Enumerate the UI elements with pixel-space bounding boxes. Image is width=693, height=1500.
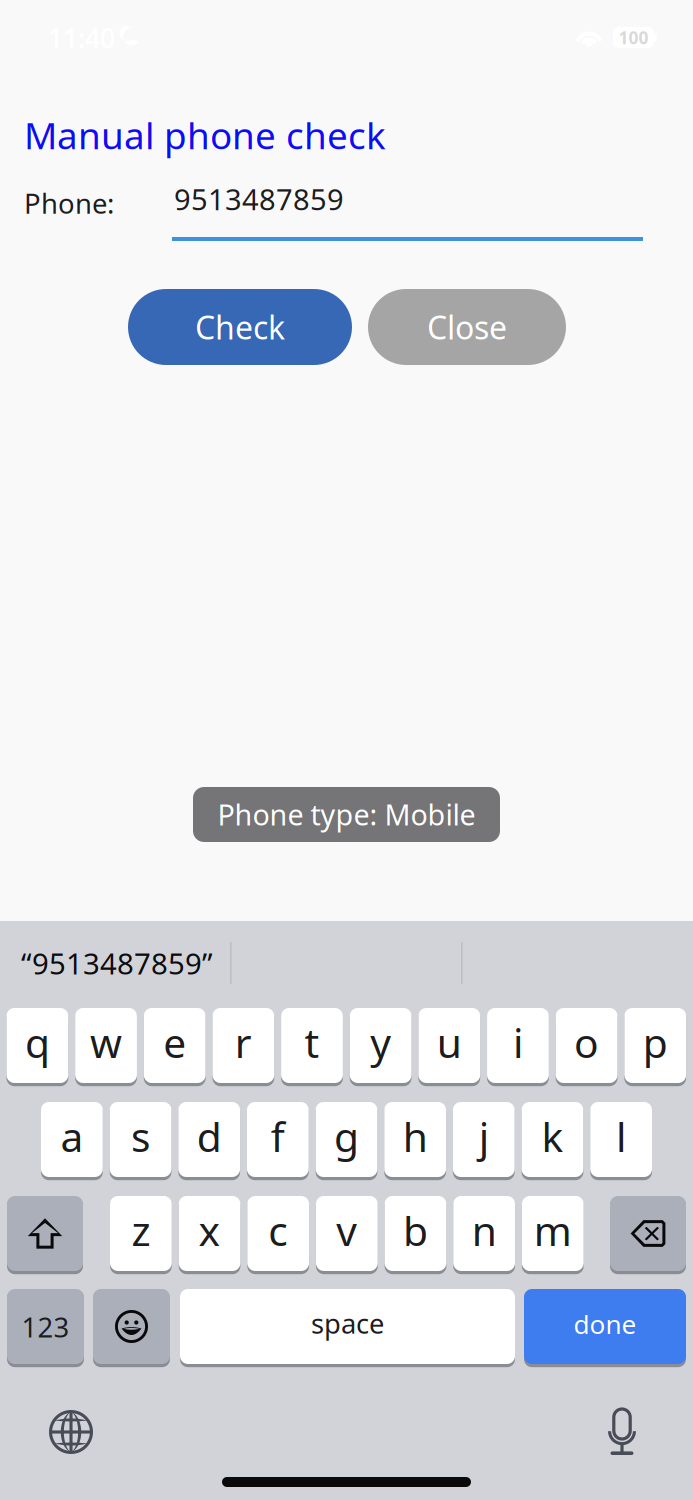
button[interactable]: u [418,1008,480,1085]
staticText: f [271,1109,285,1164]
button[interactable]: v [316,1196,378,1273]
button[interactable]: Close [368,289,566,365]
staticText: Manual phone check [24,110,386,160]
button[interactable]: Dictation [606,1407,637,1455]
staticText: s [131,1109,150,1164]
button[interactable]: Delete [610,1196,686,1273]
button[interactable]: r [212,1008,274,1085]
staticText: x [198,1203,220,1258]
staticText: g [334,1109,359,1164]
button[interactable]: 123 [7,1289,84,1366]
staticText: t [304,1015,319,1070]
staticText: u [437,1015,462,1070]
button[interactable]: y [350,1008,411,1085]
staticText: d [197,1109,222,1164]
staticText: e [163,1015,186,1070]
button[interactable]: b [385,1196,446,1273]
button[interactable]: x [179,1196,240,1273]
staticText: o [574,1015,599,1070]
button[interactable]: Shift [7,1196,83,1273]
staticText: p [643,1015,668,1070]
staticText: z [131,1203,150,1258]
button[interactable]: i [487,1008,549,1085]
staticText: j [479,1109,489,1164]
staticText: Close [427,306,507,348]
button[interactable]: Emoji [93,1289,170,1366]
staticText: Phone type: Mobile [217,795,475,834]
button[interactable]: h [384,1102,446,1179]
staticText: y [370,1015,391,1070]
staticText: 9513487859 [174,179,344,219]
staticText: done [573,1306,636,1342]
staticText: i [513,1015,523,1070]
button[interactable]: done [524,1289,686,1366]
staticText: 100 [618,26,648,49]
button[interactable]: e [144,1008,206,1085]
button[interactable]: c [247,1196,309,1273]
staticText: w [90,1015,122,1070]
staticText: Phone: [24,184,114,222]
staticText: space [311,1304,384,1342]
button[interactable]: t [281,1008,343,1085]
staticText: b [403,1203,428,1258]
button[interactable]: l [590,1102,652,1179]
button[interactable]: f [247,1102,309,1179]
button[interactable]: Check [128,289,352,365]
button[interactable]: o [556,1008,617,1085]
staticText: h [403,1109,428,1164]
button[interactable]: a [41,1102,103,1179]
button[interactable]: q [6,1008,68,1085]
button[interactable]: p [624,1008,686,1085]
staticText: 123 [21,1308,69,1346]
button[interactable]: j [453,1102,515,1179]
staticText: l [616,1109,626,1164]
button[interactable]: z [110,1196,172,1273]
button[interactable]: d [178,1102,240,1179]
staticText: Check [195,306,285,348]
staticText: c [268,1203,288,1258]
staticText: a [60,1109,83,1164]
button[interactable]: n [453,1196,515,1273]
staticText: r [235,1015,252,1070]
button[interactable]: space [180,1289,515,1366]
button[interactable]: g [316,1102,377,1179]
button[interactable]: Change keyboard [49,1410,93,1454]
staticText: q [25,1015,50,1070]
staticText: k [541,1109,563,1164]
staticText: v [336,1203,357,1258]
button[interactable]: k [521,1102,583,1179]
button[interactable]: m [522,1196,584,1273]
button[interactable]: w [75,1008,137,1085]
staticText: m [534,1203,572,1258]
staticText: n [472,1203,497,1258]
button[interactable]: s [110,1102,171,1179]
staticText: “9513487859” [21,943,213,983]
